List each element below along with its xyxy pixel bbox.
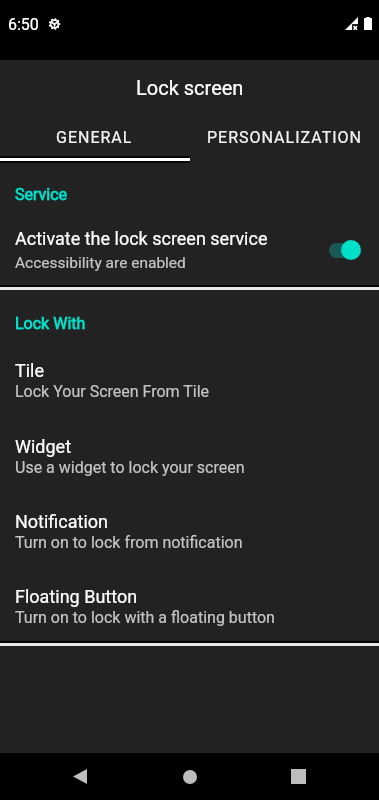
button[interactable]: Notification: [0, 507, 379, 577]
staticText: Lock screen: [136, 76, 244, 99]
staticText: Activate the lock screen service: [15, 228, 268, 249]
staticText: 6:50: [8, 15, 39, 34]
button[interactable]: PERSONALIZATION: [189, 115, 379, 159]
staticText: Accessibility are enabled: [15, 254, 186, 272]
staticText: Turn on to lock with a floating button: [15, 608, 275, 627]
button[interactable]: Recent apps: [271, 753, 325, 800]
staticText: Tile: [15, 360, 45, 381]
button[interactable]: Activate the lock screen service: [0, 222, 379, 278]
staticText: PERSONALIZATION: [207, 128, 362, 147]
button[interactable]: GENERAL: [0, 115, 189, 159]
button[interactable]: Floating Button: [0, 582, 379, 652]
staticText: Lock Your Screen From Tile: [15, 382, 210, 401]
button[interactable]: Tile: [0, 356, 379, 426]
button[interactable]: Widget: [0, 432, 379, 502]
staticText: Use a widget to lock your screen: [15, 458, 245, 477]
button[interactable]: Home: [163, 753, 217, 800]
staticText: Turn on to lock from notification: [15, 533, 243, 552]
button[interactable]: Back: [53, 753, 107, 800]
staticText: Floating Button: [15, 586, 138, 607]
staticText: Service: [15, 185, 68, 204]
staticText: Lock With: [15, 314, 86, 333]
staticText: GENERAL: [56, 128, 133, 147]
staticText: Widget: [15, 436, 72, 457]
staticText: Notification: [15, 511, 109, 532]
